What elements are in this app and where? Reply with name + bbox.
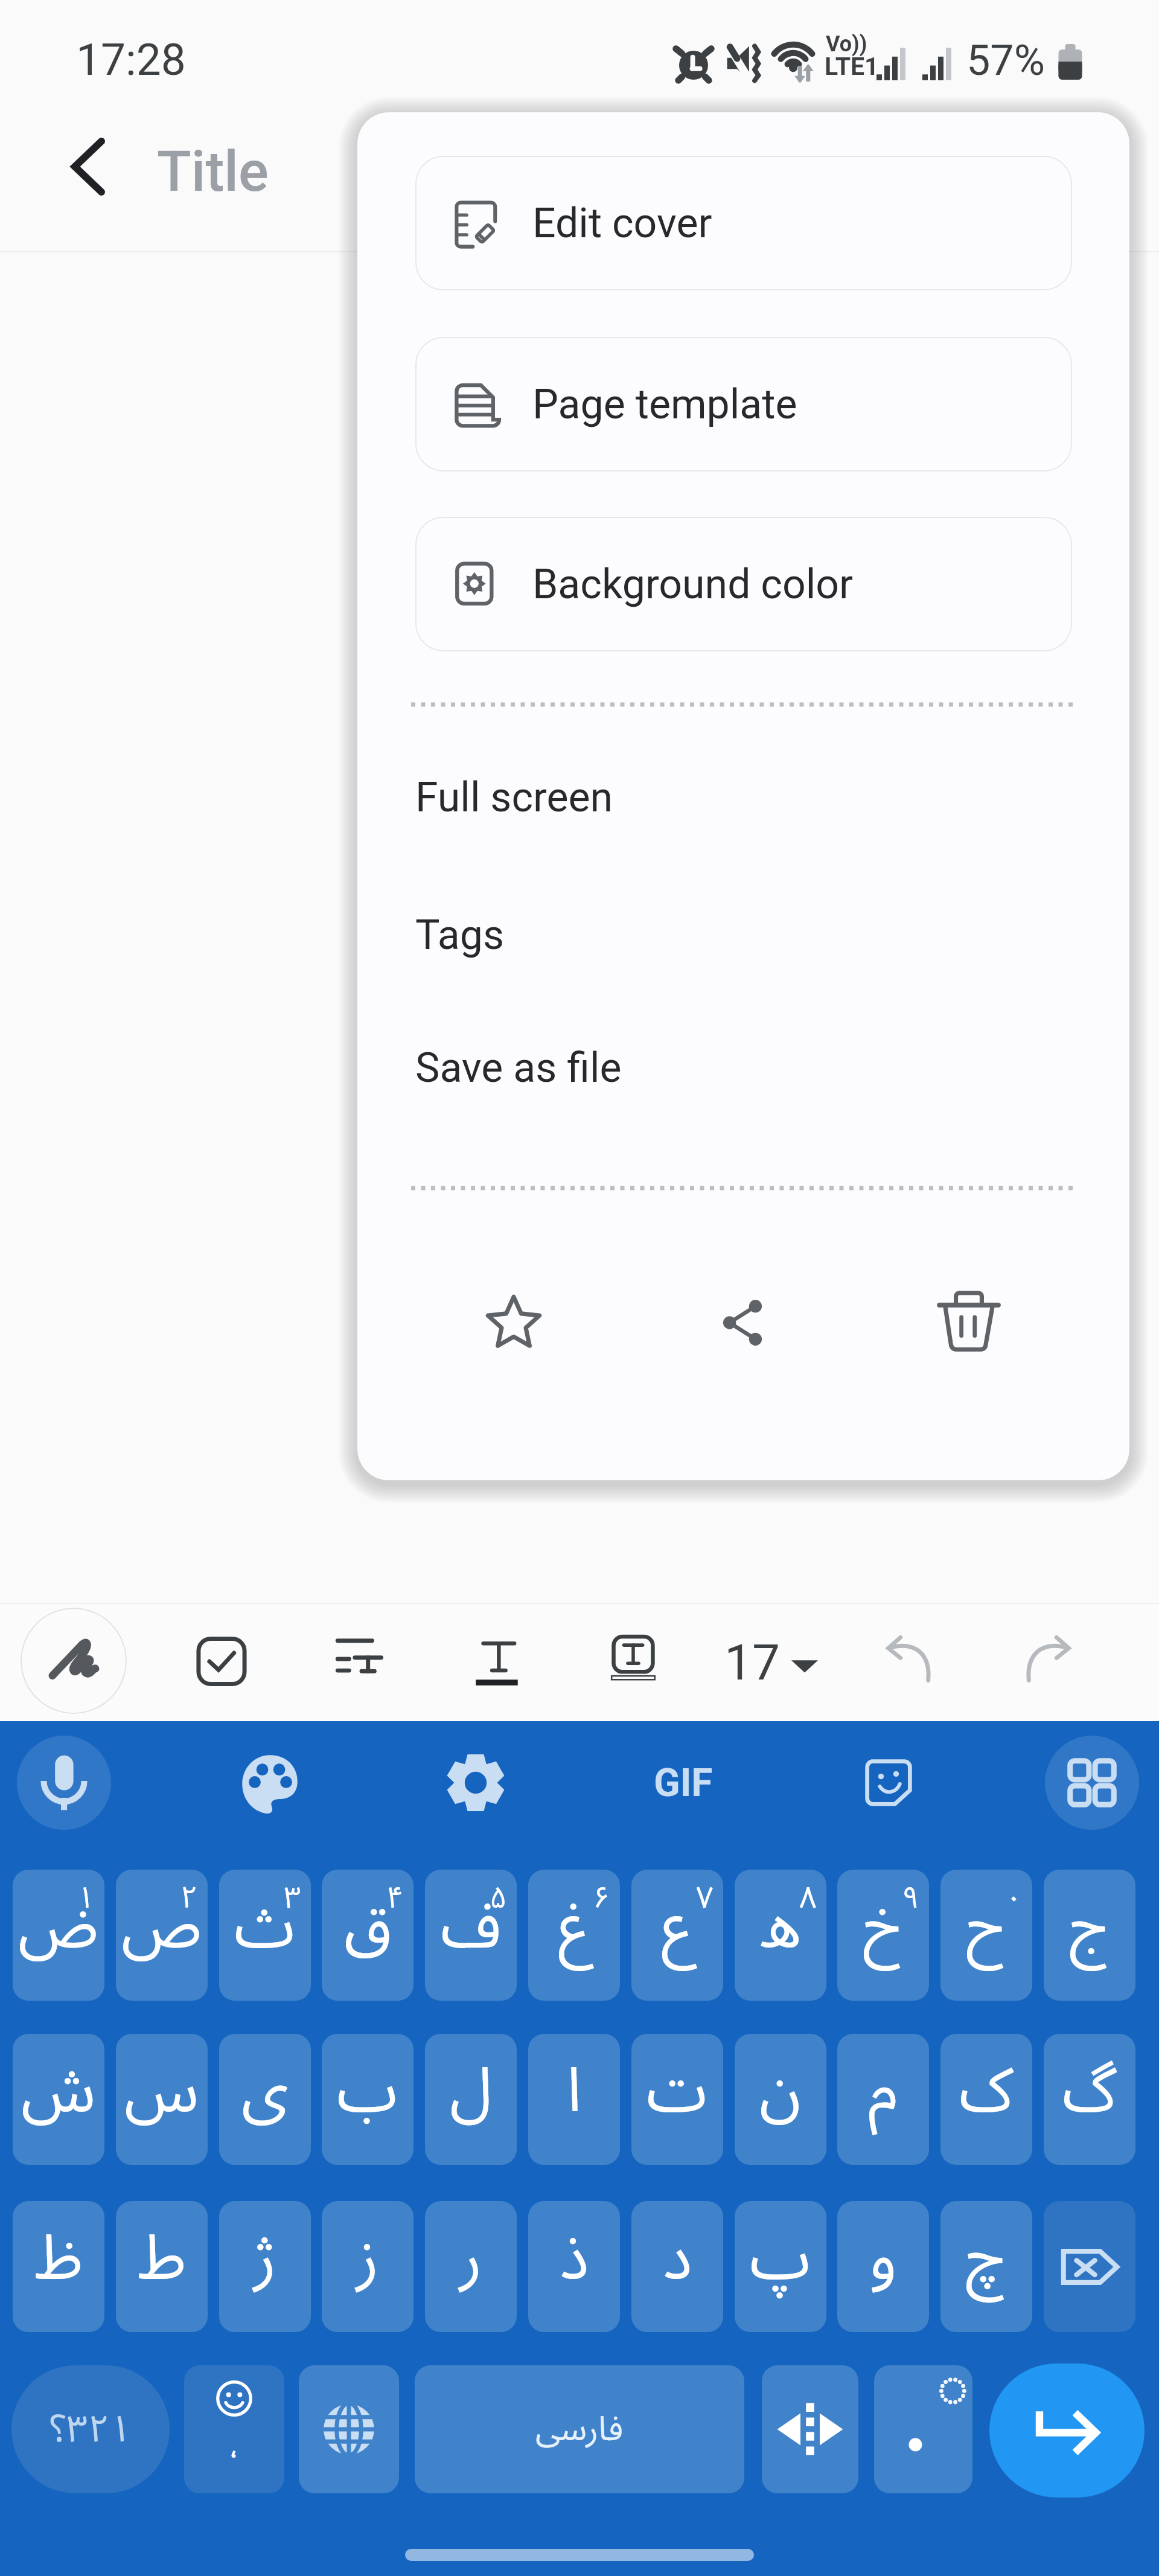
button[interactable]: Full screen <box>357 730 1129 865</box>
button[interactable]: Text background <box>599 1628 667 1695</box>
staticText: ۵ <box>490 1870 507 1930</box>
button[interactable]: ع <box>631 1870 723 2001</box>
staticText: Page template <box>532 380 797 429</box>
button[interactable]: چ <box>940 2201 1032 2332</box>
staticText: ۰ <box>1005 1870 1023 1930</box>
button[interactable]: Enter <box>989 2363 1145 2498</box>
button[interactable]: ض <box>13 1870 104 2001</box>
button[interactable]: ت <box>631 2034 723 2165</box>
staticText: GIF <box>654 1760 713 1806</box>
staticText: ض <box>18 1870 99 1992</box>
button[interactable]: Move cursor <box>762 2365 858 2493</box>
staticText: ۶ <box>593 1870 610 1930</box>
staticText: 57% <box>966 36 1045 85</box>
staticText: ۴ <box>386 1870 404 1930</box>
staticText: ش <box>21 2034 96 2156</box>
button[interactable]: ق <box>322 1870 413 2001</box>
button[interactable]: Delete <box>930 1283 1008 1362</box>
staticText: Vo)) <box>826 31 867 57</box>
button[interactable]: ن <box>735 2034 826 2165</box>
staticText: غ <box>558 1870 590 1992</box>
button[interactable]: ؟ <box>11 2365 170 2493</box>
button[interactable]: م <box>837 2034 929 2165</box>
button[interactable]: Paragraph style <box>325 1628 392 1695</box>
staticText: م <box>868 2034 898 2156</box>
button[interactable]: غ <box>528 1870 620 2001</box>
staticText: و <box>869 2201 897 2324</box>
staticText: ت <box>647 2034 708 2156</box>
staticText: ث <box>234 1870 296 1992</box>
staticText: ۷ <box>696 1870 714 1930</box>
button[interactable]: ف <box>425 1870 517 2001</box>
button[interactable]: ح <box>940 1870 1032 2001</box>
button[interactable]: Tags <box>357 868 1129 1003</box>
button[interactable]: GIF <box>641 1751 726 1814</box>
button[interactable]: Text style <box>463 1628 531 1695</box>
staticText: Edit cover <box>532 199 712 248</box>
button[interactable]: Backspace <box>1044 2201 1135 2332</box>
staticText: ه <box>760 1870 802 1992</box>
button[interactable]: ذ <box>528 2201 620 2332</box>
button[interactable]: خ <box>837 1870 929 2001</box>
button[interactable]: د <box>631 2201 723 2332</box>
staticText: خ <box>863 1870 903 1992</box>
button[interactable]: Emoji <box>184 2365 284 2493</box>
button[interactable]: Redo <box>1013 1628 1081 1695</box>
button[interactable]: ژ <box>219 2201 311 2332</box>
button[interactable]: ب <box>322 2034 413 2165</box>
button[interactable]: ر <box>425 2201 517 2332</box>
button[interactable]: Pen <box>21 1608 127 1714</box>
staticText: ز <box>356 2201 379 2324</box>
staticText: Save as file <box>415 1044 622 1092</box>
button[interactable]: Period <box>874 2365 972 2493</box>
button[interactable]: Stickers <box>857 1751 920 1814</box>
staticText: 17 <box>724 1634 781 1692</box>
button[interactable]: ج <box>1044 1870 1135 2001</box>
button[interactable]: Back <box>58 136 118 197</box>
staticText: ظ <box>34 2201 83 2324</box>
button[interactable]: Undo <box>876 1628 944 1695</box>
staticText: ۳ <box>284 1870 301 1930</box>
button[interactable]: Voice input <box>17 1736 111 1830</box>
button[interactable]: Checklist <box>188 1628 255 1695</box>
button[interactable]: Settings <box>444 1751 507 1814</box>
button[interactable]: و <box>837 2201 929 2332</box>
button[interactable]: Change language <box>299 2365 399 2493</box>
button[interactable]: ا <box>528 2034 620 2165</box>
staticText: ک <box>959 2034 1014 2156</box>
button[interactable]: گ <box>1044 2034 1135 2165</box>
staticText: ر <box>459 2201 482 2324</box>
button[interactable]: Save as file <box>357 1000 1129 1136</box>
button[interactable]: Edit cover <box>415 156 1072 290</box>
button[interactable]: 17 <box>724 1629 819 1696</box>
staticText: ا <box>567 2034 582 2156</box>
button[interactable]: ث <box>219 1870 311 2001</box>
staticText: 17:28 <box>76 34 186 86</box>
staticText: ی <box>241 2034 289 2156</box>
button[interactable]: ز <box>322 2201 413 2332</box>
staticText: Background color <box>532 560 854 609</box>
button[interactable]: فارسی <box>415 2365 744 2493</box>
staticText: Full screen <box>415 773 613 822</box>
button[interactable]: Background color <box>415 517 1072 651</box>
staticText: ۹ <box>902 1870 919 1930</box>
button[interactable]: ظ <box>13 2201 104 2332</box>
button[interactable]: ک <box>940 2034 1032 2165</box>
button[interactable]: Favorite <box>474 1283 553 1362</box>
button[interactable]: More <box>1045 1736 1139 1830</box>
button[interactable]: پ <box>735 2201 826 2332</box>
button[interactable]: ش <box>13 2034 104 2165</box>
button[interactable]: ل <box>425 2034 517 2165</box>
staticText: چ <box>966 2201 1007 2324</box>
button[interactable]: Share <box>703 1283 782 1362</box>
button[interactable]: ص <box>116 1870 208 2001</box>
button[interactable]: Page template <box>415 337 1072 471</box>
staticText: گ <box>1062 2034 1117 2156</box>
button[interactable]: Themes <box>238 1751 301 1814</box>
staticText: ق <box>344 1870 392 1992</box>
button[interactable]: ه <box>735 1870 826 2001</box>
staticText: ذ <box>560 2201 589 2324</box>
button[interactable]: ط <box>116 2201 208 2332</box>
button[interactable]: س <box>116 2034 208 2165</box>
button[interactable]: ی <box>219 2034 311 2165</box>
